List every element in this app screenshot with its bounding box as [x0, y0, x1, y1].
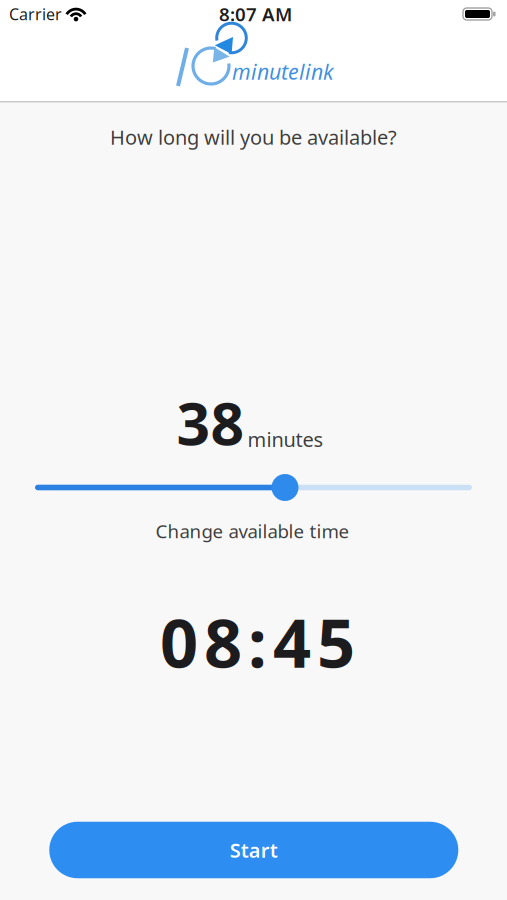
button[interactable]: Change available time: [35, 473, 472, 501]
button[interactable]: Start: [49, 822, 458, 878]
staticText: Change available time: [155, 519, 349, 543]
staticText: 8:07 AM: [219, 2, 292, 26]
staticText: 08:45: [160, 598, 355, 686]
staticText: minutes: [247, 426, 323, 452]
staticText: minutelink: [232, 57, 334, 86]
staticText: Carrier: [9, 3, 62, 25]
staticText: How long will you be available?: [110, 124, 397, 150]
staticText: Start: [230, 837, 278, 863]
staticText: 38: [176, 383, 244, 461]
